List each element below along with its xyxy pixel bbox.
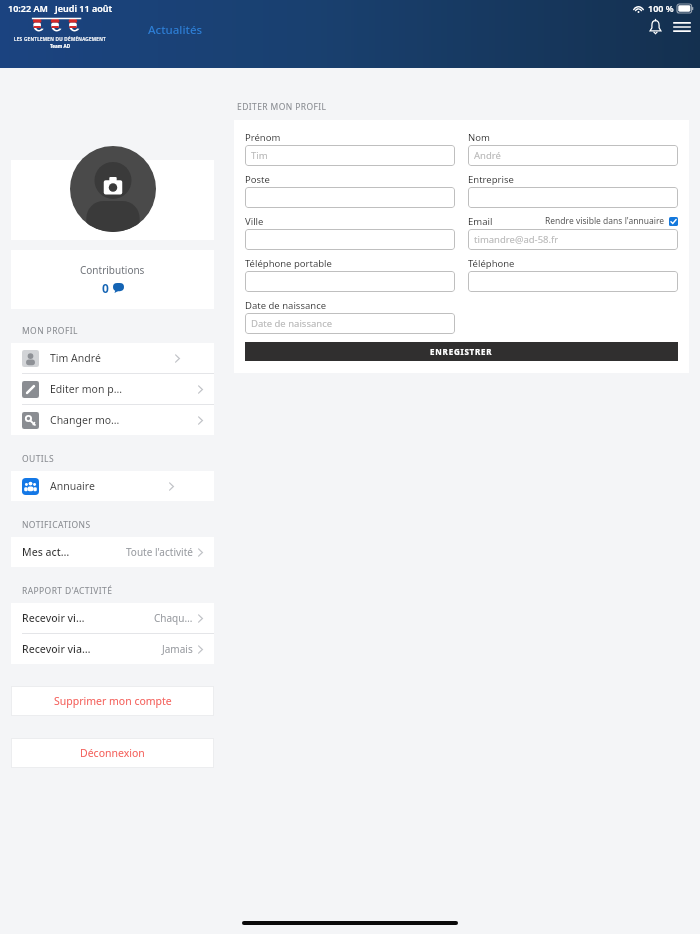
button[interactable]: Recevoir via email — [11, 634, 214, 664]
button[interactable]: timandre@ad-58.fr — [468, 229, 678, 250]
staticText: Mes actualités — [22, 545, 74, 559]
button[interactable]: Annuaire — [11, 471, 214, 501]
staticText: Jeudi 11 août — [55, 2, 113, 14]
staticText: Team AD — [50, 43, 71, 49]
button[interactable] — [468, 271, 678, 292]
staticText: Nom — [468, 131, 490, 144]
button[interactable]: Tim — [245, 145, 455, 166]
staticText: Contributions — [80, 263, 145, 277]
staticText: Actualités — [148, 22, 203, 38]
staticText: Annuaire — [50, 479, 95, 493]
staticText: EDITER MON PROFIL — [237, 101, 327, 113]
button[interactable]: Déconnexion — [11, 738, 214, 768]
staticText: Prénom — [245, 131, 281, 144]
staticText: Toute l'activité — [126, 545, 193, 559]
button[interactable]: Rendre visible dans l'annuaire — [545, 215, 678, 227]
staticText: Téléphone — [468, 257, 515, 270]
staticText: timandre@ad-58.fr — [474, 233, 559, 246]
button[interactable]: Changer mon mot de passe — [11, 405, 214, 435]
staticText: 10:22 AM — [8, 2, 48, 14]
staticText: Changer mon mot de passe — [50, 413, 124, 427]
staticText: Poste — [245, 173, 270, 186]
staticText: Tim André — [50, 351, 101, 365]
staticText: Recevoir via notification — [22, 611, 88, 625]
button[interactable]: Supprimer mon compte — [11, 686, 214, 716]
staticText: Email — [468, 215, 493, 228]
button[interactable]: Date de naissance — [245, 313, 455, 334]
staticText: OUTILS — [22, 453, 54, 465]
staticText: André — [474, 149, 501, 162]
staticText: LES GENTLEMEN DU DÉMÉNAGEMENT — [14, 36, 106, 42]
staticText: Date de naissance — [245, 299, 327, 312]
button[interactable] — [245, 187, 455, 208]
button[interactable]: Notifications — [641, 13, 669, 41]
staticText: NOTIFICATIONS — [22, 519, 91, 531]
staticText: Tim — [251, 149, 268, 162]
button[interactable]: Menu — [668, 13, 696, 41]
staticText: Recevoir via email — [22, 642, 92, 656]
staticText: Ville — [245, 215, 264, 228]
staticText: RAPPORT D'ACTIVITÉ — [22, 585, 113, 597]
button[interactable] — [245, 271, 455, 292]
staticText: Jamais — [162, 642, 193, 656]
button[interactable]: Changer la photo de profil — [70, 146, 156, 232]
button[interactable]: André — [468, 145, 678, 166]
button[interactable]: Recevoir via notification — [11, 603, 214, 633]
staticText: Téléphone portable — [245, 257, 332, 270]
button[interactable]: Tim André — [11, 343, 214, 373]
button[interactable]: Actualités — [140, 16, 211, 44]
button[interactable]: Mes actualités — [11, 537, 214, 567]
staticText: 0 — [102, 280, 109, 296]
button[interactable]: ENREGISTRER — [245, 342, 678, 361]
button[interactable] — [468, 187, 678, 208]
staticText: Editer mon profil — [50, 382, 124, 396]
staticText: Supprimer mon compte — [54, 694, 172, 708]
staticText: Entreprise — [468, 173, 514, 186]
staticText: Déconnexion — [80, 746, 145, 760]
button[interactable]: Editer mon profil — [11, 374, 214, 404]
staticText: Chaqu… — [154, 611, 193, 625]
staticText: 100 % — [648, 2, 674, 14]
staticText: Rendre visible dans l'annuaire — [545, 215, 665, 227]
staticText: Date de naissance — [251, 317, 333, 330]
button[interactable] — [245, 229, 455, 250]
staticText: MON PROFIL — [22, 325, 78, 337]
staticText: ENREGISTRER — [430, 346, 493, 357]
button[interactable]: Tim A. — [11, 160, 214, 240]
button[interactable]: Contributions — [11, 250, 214, 309]
